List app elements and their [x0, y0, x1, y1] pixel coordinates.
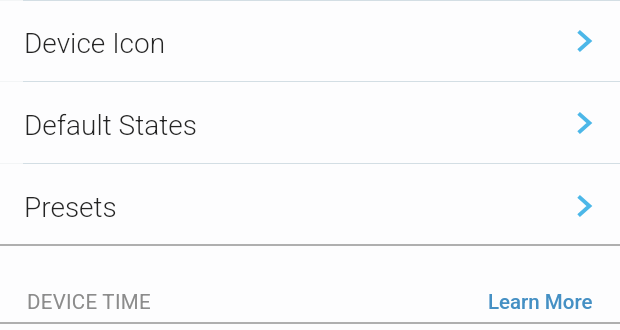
staticText: Presets — [24, 191, 117, 224]
staticText: DEVICE TIME — [27, 290, 151, 314]
other: Open Default States — [573, 109, 595, 137]
other: Open Device Icon — [573, 27, 595, 55]
staticText: Learn More — [488, 290, 593, 314]
button[interactable]: Learn More — [488, 290, 593, 314]
other: Open Presets — [573, 192, 595, 220]
button[interactable]: Device Icon — [0, 1, 620, 81]
button[interactable]: Default States — [0, 82, 620, 163]
staticText: Device Icon — [24, 27, 166, 60]
staticText: Default States — [24, 109, 197, 142]
button[interactable]: Presets — [0, 164, 620, 244]
